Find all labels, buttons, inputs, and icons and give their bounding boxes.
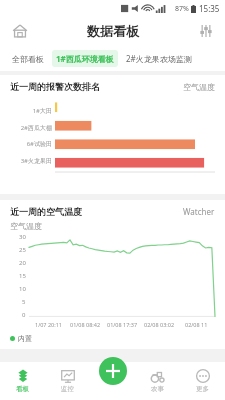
staticText: 看板 (16, 385, 29, 393)
button[interactable]: Filter (197, 22, 215, 40)
staticText: 空气温度 (183, 82, 215, 92)
button[interactable]: 看板 (0, 362, 45, 400)
staticText: 87% (175, 4, 189, 14)
staticText: 20 (19, 259, 26, 267)
staticText: 5 (22, 298, 26, 306)
staticText: 农事 (151, 385, 164, 393)
staticText: 25 (19, 246, 26, 254)
staticText: 监控 (61, 385, 74, 393)
staticText: 近一周的报警次数排名 (10, 81, 100, 92)
staticText: 3#火龙果田 (20, 157, 52, 165)
staticText: 1#西瓜环境看板 (56, 53, 114, 64)
staticText: 内置 (18, 334, 32, 343)
button[interactable]: 农事 (135, 362, 180, 400)
staticText: 2#火龙果农场监测 (126, 53, 192, 64)
staticText: 01/08 17:37 (107, 321, 138, 328)
button[interactable]: 监控 (45, 362, 90, 400)
staticText: 10 (19, 285, 26, 293)
button[interactable]: Home (10, 21, 30, 41)
button[interactable]: 1#西瓜环境看板 (52, 50, 118, 67)
staticText: 空气温度 (10, 221, 42, 231)
button[interactable]: 更多 (180, 362, 225, 400)
button[interactable]: 2#火龙果农场监测 (122, 50, 196, 67)
staticText: 15 (19, 272, 26, 280)
staticText: 02/08 11 (185, 321, 208, 328)
staticText: 数据看板 (87, 23, 139, 39)
staticText: 1/07 20:11 (35, 321, 62, 328)
staticText: 2#西瓜大棚 (20, 124, 52, 132)
button[interactable]: 全部看板 (8, 51, 48, 67)
button[interactable]: Add (99, 357, 127, 385)
staticText: 02/08 03:02 (144, 321, 175, 328)
staticText: 近一周的空气温度 (10, 206, 82, 217)
staticText: 15:35 (199, 3, 220, 14)
staticText: 更多 (196, 385, 209, 393)
staticText: 30 (19, 233, 26, 241)
staticText: 6#试验田 (26, 140, 52, 148)
staticText: 全部看板 (12, 54, 44, 64)
staticText: 1#大田 (32, 107, 52, 115)
staticText: 0 (22, 311, 26, 319)
staticText: 01/08 08:42 (70, 321, 101, 328)
staticText: Watcher (183, 206, 215, 217)
